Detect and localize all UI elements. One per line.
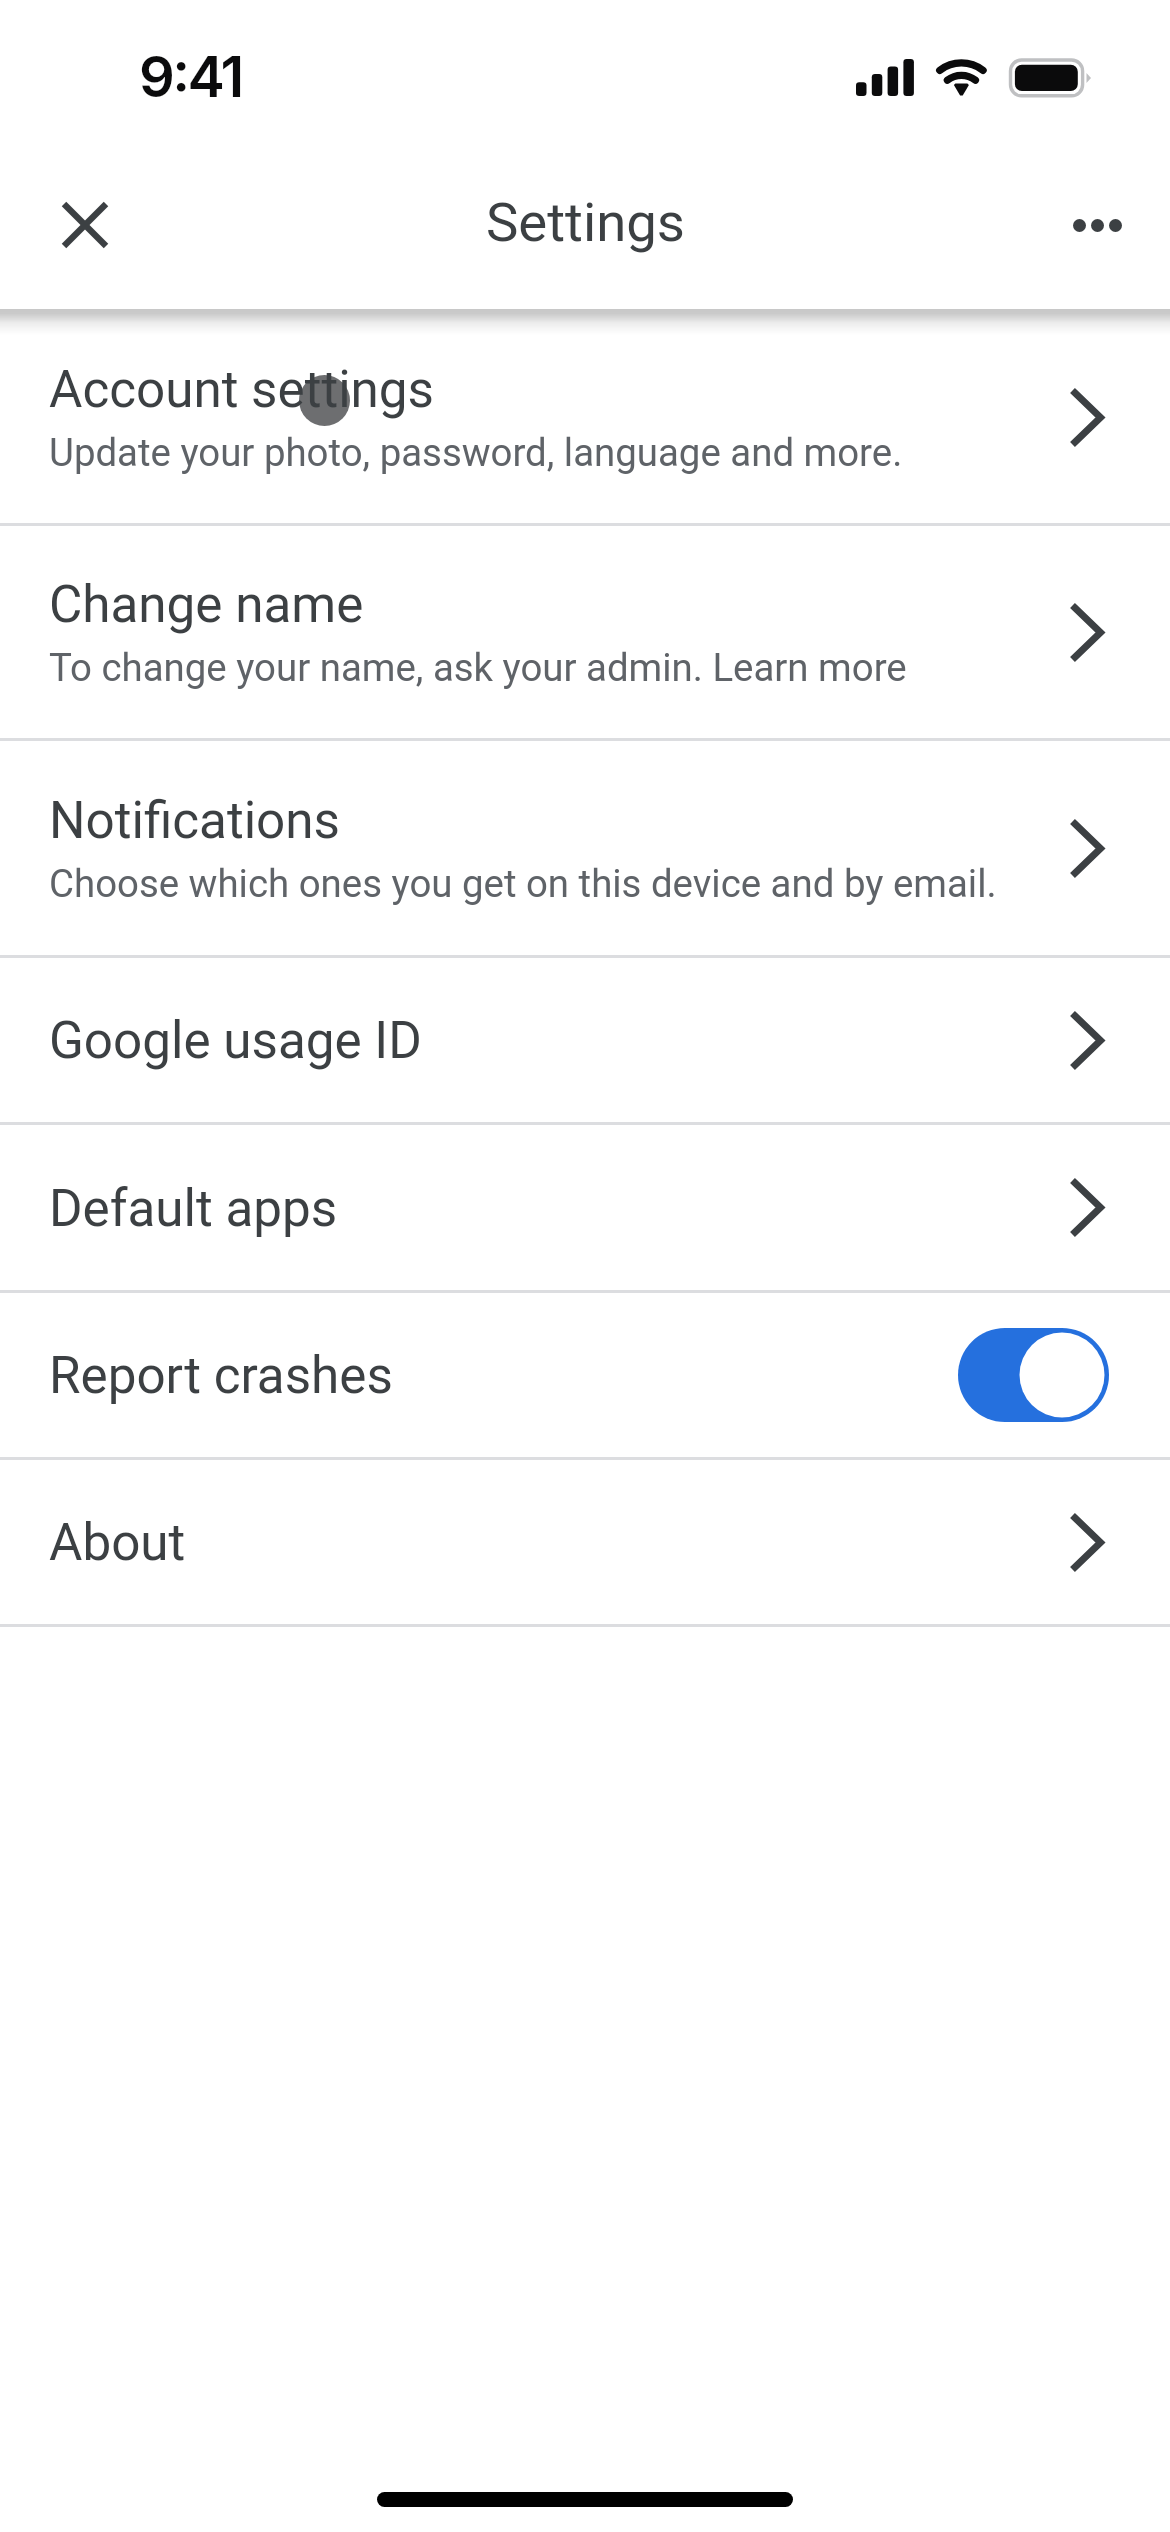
button[interactable]: More options bbox=[1049, 177, 1145, 273]
button[interactable]: Report crashes bbox=[0, 1293, 1170, 1457]
button[interactable]: Account settings bbox=[0, 311, 1170, 523]
button[interactable]: Close bbox=[37, 177, 133, 273]
staticText: 9:41 bbox=[139, 43, 242, 111]
button[interactable]: Default apps bbox=[0, 1125, 1170, 1290]
staticText: Report crashes bbox=[49, 1345, 958, 1405]
staticText: Default apps bbox=[49, 1178, 1069, 1238]
staticText: Settings bbox=[486, 190, 685, 254]
staticText: Notifications bbox=[49, 790, 340, 850]
button[interactable]: Google usage ID bbox=[0, 958, 1170, 1122]
staticText: About bbox=[49, 1512, 1069, 1572]
staticText: Choose which ones you get on this device… bbox=[49, 861, 997, 906]
staticText: Change name bbox=[49, 574, 364, 634]
button[interactable]: Report crashes toggle, on bbox=[958, 1328, 1109, 1422]
staticText: Google usage ID bbox=[49, 1010, 1069, 1070]
button[interactable]: About bbox=[0, 1460, 1170, 1624]
staticText: Account settings bbox=[49, 359, 435, 419]
button[interactable]: Notifications bbox=[0, 741, 1170, 955]
staticText: To change your name, ask your admin. Lea… bbox=[49, 645, 907, 690]
button[interactable]: Change name bbox=[0, 526, 1170, 738]
staticText: Update your photo, password, language an… bbox=[49, 430, 903, 475]
